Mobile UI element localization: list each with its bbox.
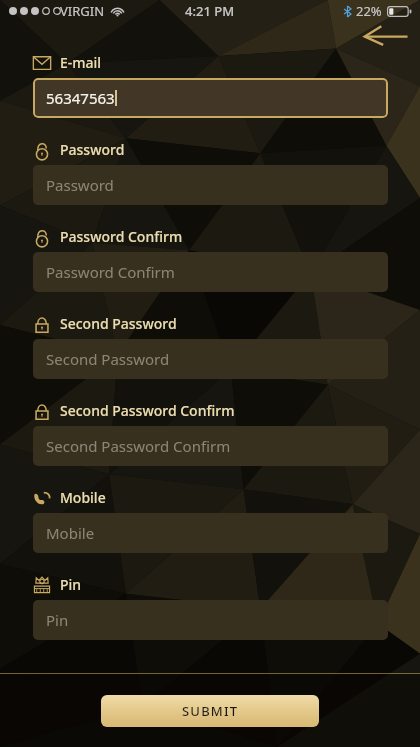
staticText: Pin — [46, 610, 69, 630]
staticText: Second Password Confirm — [60, 401, 235, 420]
button[interactable]: Password Confirm — [33, 252, 388, 292]
staticText: Mobile — [60, 488, 106, 507]
button[interactable]: Password — [33, 165, 388, 205]
staticText: Password — [60, 140, 125, 159]
button[interactable]: Second Password — [33, 339, 388, 379]
staticText: Pin — [60, 575, 82, 594]
staticText: Password Confirm — [60, 227, 183, 246]
staticText: Second Password — [60, 314, 177, 333]
staticText: Password — [46, 175, 114, 195]
button[interactable]: SUBMIT — [101, 695, 319, 727]
button[interactable]: Second Password Confirm — [33, 426, 388, 466]
staticText: Mobile — [46, 523, 95, 543]
staticText: 4:21 PM — [185, 2, 235, 20]
button[interactable]: Back — [362, 25, 408, 45]
staticText: Password Confirm — [46, 262, 175, 282]
staticText: E-mail — [60, 53, 102, 72]
staticText: SUBMIT — [182, 702, 239, 720]
staticText: 22% — [356, 2, 382, 20]
staticText: Second Password Confirm — [46, 436, 231, 456]
button[interactable]: Mobile — [33, 513, 388, 553]
button[interactable]: 56347563 — [33, 78, 388, 118]
staticText: VIRGIN — [60, 2, 105, 20]
staticText: 56347563 — [46, 88, 115, 108]
button[interactable]: Pin — [33, 600, 388, 640]
staticText: Second Password — [46, 349, 170, 369]
